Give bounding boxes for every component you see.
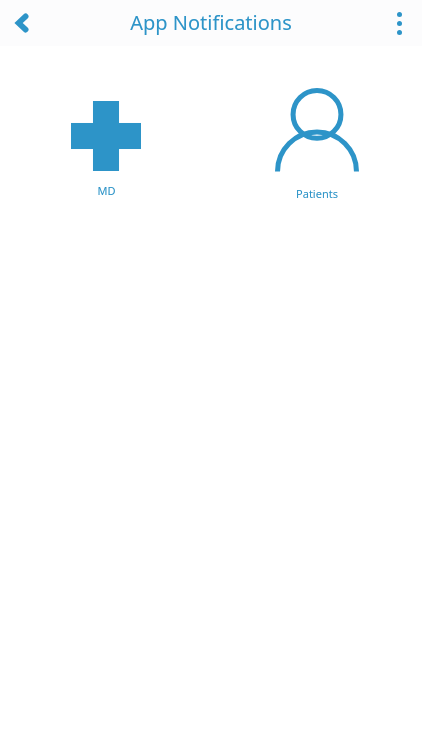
staticText: Patients [296,186,338,201]
button[interactable]: More options [376,0,422,46]
staticText: MD [97,183,116,198]
staticText: App Notifications [130,9,292,36]
button[interactable]: MD [0,46,211,246]
button[interactable]: Patients [211,46,422,246]
button[interactable]: Back [0,0,46,46]
